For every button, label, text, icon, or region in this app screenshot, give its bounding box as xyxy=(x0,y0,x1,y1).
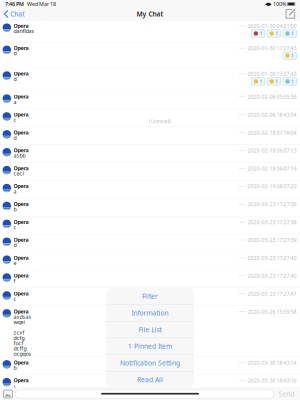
button[interactable]: Notification Setting xyxy=(106,355,194,371)
button[interactable]: Opera xyxy=(0,217,300,234)
staticText: c xyxy=(14,382,17,389)
staticText: ocgqos xyxy=(14,350,32,357)
staticText: Wed Mar 18 xyxy=(24,0,56,8)
button[interactable]: Opera xyxy=(0,181,300,199)
staticText: d xyxy=(14,134,17,141)
staticText: 2020-01-30 17:27:43 xyxy=(247,70,296,77)
staticText: 2020-02-06 05:05:36 xyxy=(247,93,296,100)
staticText: 1 xyxy=(291,30,294,37)
staticText: d xyxy=(14,50,17,57)
staticText: Opera xyxy=(14,236,29,243)
staticText: 1 Pinned Item xyxy=(128,342,172,351)
button[interactable]: Opera xyxy=(0,252,300,270)
staticText: Opera xyxy=(14,22,29,29)
staticText: asdsas xyxy=(14,313,32,320)
staticText: cecl xyxy=(14,170,24,177)
staticText: 1 xyxy=(275,30,278,37)
staticText: 1 xyxy=(275,78,278,85)
staticText: focf xyxy=(14,340,24,347)
staticText: dcffg xyxy=(14,345,27,352)
button[interactable]: Opera xyxy=(0,306,300,357)
staticText: a xyxy=(14,188,17,195)
staticText: asbb xyxy=(14,152,26,159)
staticText: File List xyxy=(138,325,161,334)
staticText: a xyxy=(14,98,17,105)
button[interactable]: Opera xyxy=(0,43,300,68)
button[interactable]: Opera xyxy=(0,199,300,217)
button[interactable]: Opera xyxy=(0,127,300,145)
staticText: b xyxy=(14,364,17,371)
button[interactable]: Send xyxy=(276,390,296,398)
staticText: c xyxy=(14,116,17,123)
staticText: My Chat xyxy=(136,10,163,18)
staticText: 7:46 PM xyxy=(5,0,24,8)
button[interactable]: Opera xyxy=(0,20,300,43)
staticText: 100% xyxy=(273,0,286,8)
staticText: 2020-03-30 18:43:16 xyxy=(247,377,296,384)
staticText: Opera xyxy=(14,308,29,315)
button[interactable]: Compose xyxy=(281,8,300,20)
staticText: Opera xyxy=(14,111,29,118)
staticText: f xyxy=(14,277,16,284)
staticText: wqei xyxy=(14,318,25,325)
staticText: Opera xyxy=(14,290,29,297)
staticText: zcvf xyxy=(14,329,25,336)
button[interactable]: Filter xyxy=(106,288,194,304)
staticText: 2020-02-18 06:07:13 xyxy=(247,147,296,154)
staticText: 2020-03-23 17:27:38 xyxy=(247,219,296,226)
staticText: 2020-03-26 15:59:58 xyxy=(247,308,296,315)
staticText: Information xyxy=(131,308,168,317)
button[interactable]: Opera xyxy=(0,68,300,91)
staticText: Opera xyxy=(14,44,29,51)
staticText: Opera xyxy=(14,200,29,207)
staticText: Read All xyxy=(137,375,163,384)
staticText: Chat xyxy=(10,10,24,18)
staticText: 2020-02-18 06:07:16 xyxy=(247,165,296,172)
staticText: (Unread) xyxy=(149,118,171,125)
staticText: Opera xyxy=(14,93,29,100)
button[interactable]: Opera xyxy=(0,145,300,163)
staticText: 2020-01-30 04:21:00 xyxy=(247,22,296,29)
staticText: Filter xyxy=(142,292,158,301)
staticText: 2020-03-23 17:27:39 xyxy=(247,236,296,244)
staticText: 2020-02-18 07:16:04 xyxy=(247,129,296,136)
button[interactable]: Read All xyxy=(106,371,194,388)
button[interactable]: Opera xyxy=(0,109,300,127)
button[interactable]: Opera xyxy=(0,234,300,252)
button[interactable]: 1 Pinned Item xyxy=(106,338,194,354)
staticText: e xyxy=(14,259,17,266)
staticText: Opera xyxy=(14,272,29,279)
staticText: Opera xyxy=(14,147,29,154)
staticText: 2020-03-30 18:43:14 xyxy=(247,359,296,366)
staticText: 1 xyxy=(259,30,262,37)
button[interactable]: Opera xyxy=(0,91,300,109)
staticText: 2020-01-30 17:27:43 xyxy=(247,45,296,52)
staticText: Opera xyxy=(14,359,29,366)
staticText: Opera xyxy=(14,254,29,261)
button[interactable]: Information xyxy=(106,305,194,321)
button[interactable]: Chat xyxy=(0,8,28,20)
staticText: 2020-02-19 08:07:20 xyxy=(247,183,296,190)
button[interactable]: Opera xyxy=(0,270,300,288)
staticText: 2020-02-06 18:43:54 xyxy=(247,111,296,118)
button[interactable]: File List xyxy=(106,321,194,338)
staticText: Opera xyxy=(14,182,29,190)
staticText: d xyxy=(14,75,17,82)
staticText: d xyxy=(14,241,17,249)
button[interactable]: Opera xyxy=(0,163,300,181)
button[interactable]: Add photo xyxy=(3,390,12,398)
button[interactable]: Opera xyxy=(0,357,300,375)
staticText: Opera xyxy=(14,218,29,225)
staticText: Opera xyxy=(14,70,29,77)
staticText: 2020-03-23 17:27:40 xyxy=(247,272,296,279)
staticText: 1 xyxy=(291,52,294,59)
staticText: Opera xyxy=(14,165,29,172)
button[interactable]: Opera xyxy=(0,375,300,388)
staticText: dcfg xyxy=(14,334,25,341)
staticText: Opera xyxy=(14,377,29,384)
staticText: danfldas xyxy=(14,27,35,34)
staticText: c xyxy=(14,295,17,302)
staticText: 1 xyxy=(259,78,262,85)
button[interactable]: Opera xyxy=(0,288,300,306)
